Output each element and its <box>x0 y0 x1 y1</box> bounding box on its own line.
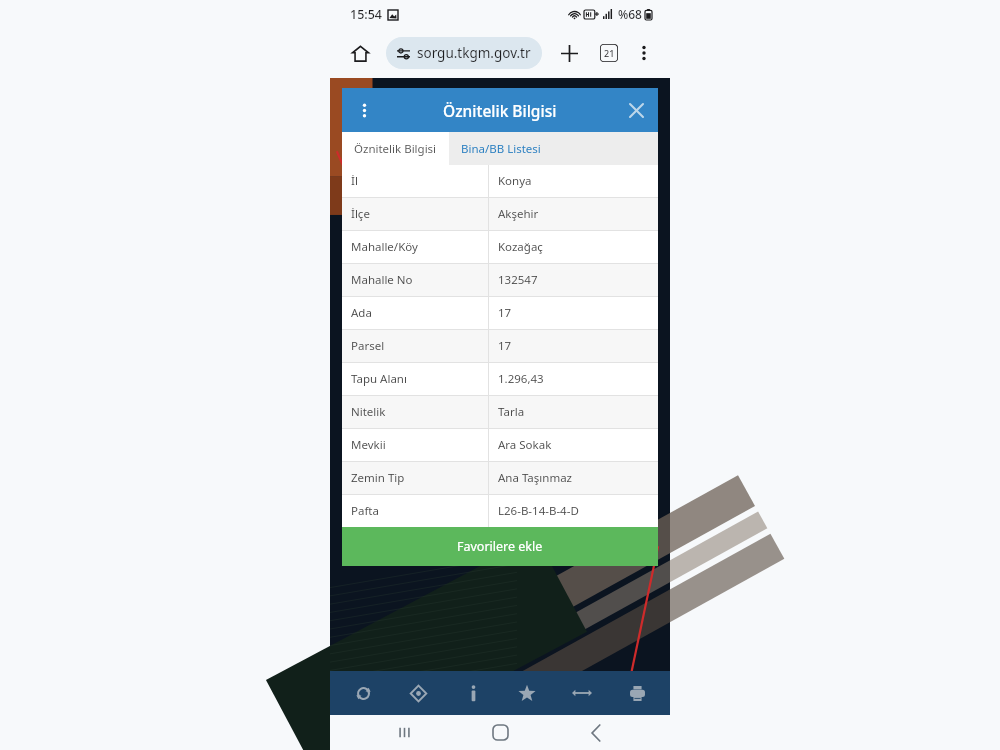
button[interactable]: Tabs: 21 <box>594 38 624 68</box>
staticText: %68 <box>618 6 642 22</box>
button[interactable]: Öznitelik Bilgisi <box>342 132 449 165</box>
staticText: L26-B-14-B-4-D <box>498 503 579 519</box>
staticText: Parsel <box>351 338 385 354</box>
staticText: İlçe <box>351 206 370 222</box>
staticText: Nitelik <box>351 404 386 420</box>
staticText: 1.296,43 <box>498 371 544 387</box>
staticText: Pafta <box>351 503 379 519</box>
button[interactable]: Back <box>574 715 618 750</box>
staticText: Mevkii <box>351 437 386 453</box>
staticText: 132547 <box>498 272 538 288</box>
button[interactable]: Close <box>620 94 652 126</box>
staticText: Ara Sokak <box>498 437 552 453</box>
staticText: Bina/BB Listesi <box>461 141 541 157</box>
button[interactable]: Print <box>615 671 659 715</box>
button[interactable]: Favorites <box>505 671 549 715</box>
button[interactable]: Tapu Alanı <box>342 363 658 395</box>
staticText: Akşehir <box>498 206 539 222</box>
staticText: Konya <box>498 173 532 189</box>
button[interactable]: Parsel <box>342 330 658 362</box>
staticText: Öznitelik Bilgisi <box>443 100 557 121</box>
button[interactable]: Menu <box>348 94 380 126</box>
button[interactable]: Home <box>478 715 522 750</box>
staticText: Mahalle No <box>351 272 413 288</box>
button[interactable]: Mevkii <box>342 429 658 461</box>
button[interactable]: Pafta <box>342 495 658 527</box>
staticText: Tapu Alanı <box>351 371 407 387</box>
button[interactable]: Nitelik <box>342 396 658 428</box>
staticText: Ada <box>351 305 372 321</box>
button[interactable]: Recent apps <box>382 715 426 750</box>
button[interactable]: More options <box>632 38 656 68</box>
staticText: 17 <box>498 338 512 354</box>
button[interactable]: Measure <box>560 671 604 715</box>
staticText: sorgu.tkgm.gov.tr <box>417 44 531 62</box>
staticText: 21 <box>604 47 615 59</box>
button[interactable]: Locate <box>396 671 440 715</box>
button[interactable]: Zemin Tip <box>342 462 658 494</box>
staticText: 15:54 <box>350 6 383 23</box>
button[interactable]: sorgu.tkgm.gov.tr <box>386 37 542 69</box>
button[interactable]: Favorilere ekle <box>342 527 658 566</box>
button[interactable]: Mahalle/Köy <box>342 231 658 263</box>
button[interactable]: Mahalle No <box>342 264 658 296</box>
staticText: İl <box>351 173 358 189</box>
staticText: Öznitelik Bilgisi <box>354 141 437 157</box>
staticText: Tarla <box>498 404 525 420</box>
button[interactable]: Info <box>451 671 495 715</box>
staticText: Mahalle/Köy <box>351 239 418 255</box>
button[interactable]: Bina/BB Listesi <box>449 132 553 165</box>
button[interactable]: Home <box>344 37 376 69</box>
staticText: Kozağaç <box>498 239 543 255</box>
button[interactable]: İlçe <box>342 198 658 230</box>
staticText: 17 <box>498 305 512 321</box>
button[interactable]: New tab <box>554 38 584 68</box>
button[interactable]: Ada <box>342 297 658 329</box>
staticText: Favorilere ekle <box>457 538 543 555</box>
button[interactable]: İl <box>342 165 658 197</box>
staticText: Zemin Tip <box>351 470 405 486</box>
staticText: Ana Taşınmaz <box>498 470 573 486</box>
button[interactable]: Refresh <box>341 671 385 715</box>
